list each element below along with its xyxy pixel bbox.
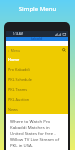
button[interactable]: PKL Auction xyxy=(6,94,68,104)
staticText: Simple Menu xyxy=(0,5,75,13)
staticText: PKL Teams xyxy=(8,87,28,92)
staticText: ‹ Menu xyxy=(8,48,20,53)
staticText: PKL Schedule xyxy=(8,77,32,82)
staticText: Pro Kabaddi xyxy=(8,67,30,72)
staticText: 1:14 AM xyxy=(13,32,23,36)
button[interactable]: Search xyxy=(62,48,66,52)
staticText: Home xyxy=(8,57,20,62)
button[interactable]: ‹ Menu xyxy=(8,48,20,53)
button[interactable]: PKL Teams xyxy=(6,84,68,94)
button[interactable]: Home xyxy=(6,54,68,64)
button[interactable]: Pro Kabaddi xyxy=(6,64,68,74)
staticText: PKL Auction xyxy=(8,97,30,102)
staticText: Where to Watch Pro Kabaddi Matches in Un… xyxy=(10,118,60,148)
button[interactable]: News xyxy=(6,104,68,114)
staticText: News xyxy=(8,107,18,112)
button[interactable]: PKL Schedule xyxy=(6,74,68,84)
staticText: kabaddi xyxy=(31,37,43,41)
